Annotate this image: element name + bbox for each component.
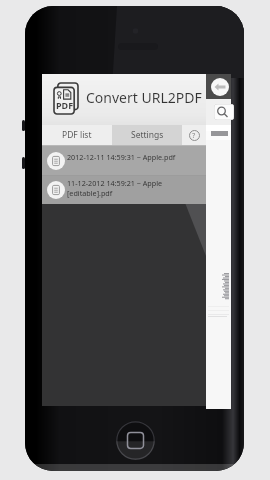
- staticText: PDF: [56, 99, 74, 111]
- button[interactable]: 2012-12-11 14:59:31 ~ Apple.pdf: [42, 146, 206, 175]
- staticText: 2012-12-11 14:59:31 ~ Apple.pdf: [67, 152, 176, 162]
- staticText: ?: [192, 130, 196, 140]
- button[interactable]: Back: [211, 78, 229, 96]
- button[interactable]: Settings: [112, 125, 182, 145]
- button[interactable]: 11-12-2012 14:59:21 ~ Apple: [42, 176, 206, 204]
- button[interactable]: Help: [182, 125, 206, 145]
- staticText: Settings: [131, 129, 164, 141]
- staticText: PDF list: [62, 129, 92, 141]
- button[interactable]: PDF list: [42, 125, 112, 145]
- button[interactable]: Search: [214, 104, 234, 120]
- staticText: Convert URL2PDF: [86, 88, 202, 107]
- staticText: 11-12-2012 14:59:21 ~ Apple: [67, 178, 163, 188]
- staticText: [editable].pdf: [67, 188, 113, 198]
